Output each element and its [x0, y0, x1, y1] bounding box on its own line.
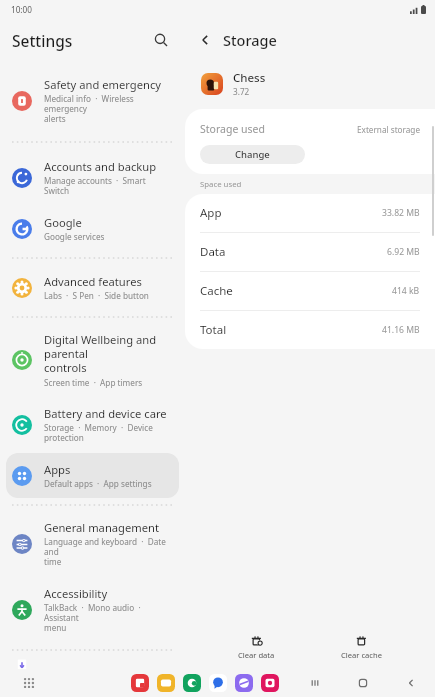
button[interactable]: Google [6, 206, 179, 251]
staticText: Safety and emergency [44, 77, 161, 92]
staticText: Accessibility [44, 586, 108, 601]
staticText: 6.92 MB [387, 246, 420, 258]
button[interactable]: General management [6, 511, 179, 577]
staticText: TalkBack · Mono audio · Assistant menu [44, 602, 171, 634]
staticText: Cache [200, 283, 233, 299]
staticText: Storage [223, 30, 277, 50]
staticText: App [200, 205, 222, 221]
staticText: Labs · S Pen · Side button [44, 290, 149, 301]
button[interactable]: Back [403, 675, 419, 691]
button[interactable]: Clear data [224, 631, 289, 663]
staticText: Battery and device care [44, 406, 167, 421]
staticText: 3.72 [233, 86, 250, 97]
button[interactable]: Clear cache [327, 631, 396, 663]
staticText: Settings [12, 30, 73, 51]
button[interactable]: Data [185, 233, 435, 272]
staticText: Total [200, 322, 227, 338]
staticText: Medical info · Wireless emergency alerts [44, 93, 171, 125]
button[interactable]: Home [355, 675, 371, 691]
staticText: Accounts and backup [44, 159, 157, 174]
staticText: 41.16 MB [382, 324, 420, 336]
staticText: General management [44, 520, 159, 535]
button[interactable]: Phone [183, 674, 201, 692]
button[interactable]: Accounts and backup [6, 150, 179, 206]
button[interactable]: Total [185, 311, 435, 349]
staticText: Language and keyboard · Date and time [44, 536, 171, 568]
staticText: Google [44, 215, 82, 230]
button[interactable]: Software update [6, 656, 179, 669]
staticText: 414 kB [392, 285, 420, 297]
button[interactable]: Cache [185, 272, 435, 311]
staticText: Change [235, 148, 270, 161]
staticText: Chess [233, 70, 266, 86]
staticText: Screen time · App timers [44, 377, 143, 388]
button[interactable]: Internet [235, 674, 253, 692]
button[interactable]: Change [200, 145, 305, 164]
button[interactable]: Camera [261, 674, 279, 692]
staticText: Advanced features [44, 274, 142, 289]
staticText: Clear data [238, 650, 275, 660]
button[interactable]: Back [193, 28, 217, 52]
staticText: Data [200, 244, 226, 260]
staticText: External storage [357, 124, 421, 135]
button[interactable]: Recents [307, 675, 323, 691]
staticText: Storage used [200, 122, 265, 136]
button[interactable]: Digital Wellbeing and parental controls [6, 323, 179, 397]
staticText: Clear cache [341, 650, 382, 660]
button[interactable]: Accessibility [6, 577, 179, 643]
button[interactable]: My Files [157, 674, 175, 692]
button[interactable]: All apps [22, 676, 36, 690]
button[interactable]: App [185, 194, 435, 233]
staticText: Apps [44, 462, 71, 477]
staticText: Storage · Memory · Device protection [44, 422, 171, 444]
button[interactable]: Apps [6, 453, 179, 498]
staticText: 33.82 MB [382, 207, 420, 219]
button[interactable]: Search [149, 28, 173, 52]
button[interactable]: Battery and device care [6, 397, 179, 453]
staticText: Space used [200, 179, 242, 190]
button[interactable]: Gallery [131, 674, 149, 692]
staticText: Default apps · App settings [44, 478, 152, 489]
button[interactable]: Safety and emergency [6, 68, 179, 134]
staticText: Digital Wellbeing and parental controls [44, 332, 171, 376]
button[interactable]: Advanced features [6, 265, 179, 310]
staticText: Google services [44, 231, 105, 242]
button[interactable]: Messages [209, 674, 227, 692]
staticText: 10:00 [11, 4, 32, 15]
staticText: Manage accounts · Smart Switch [44, 175, 171, 197]
